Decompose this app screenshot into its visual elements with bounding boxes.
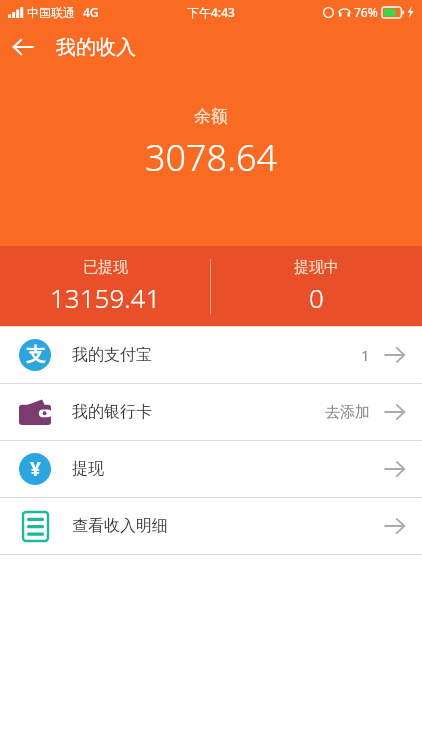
staticText: 下午4:43 — [187, 4, 235, 20]
staticText: 4G — [83, 4, 99, 20]
button[interactable]: 查看收入明细 — [0, 498, 422, 554]
staticText: 提现 — [72, 459, 104, 479]
staticText: 1 — [361, 345, 370, 365]
button[interactable]: ¥ — [0, 441, 422, 497]
staticText: 去添加 — [325, 403, 370, 422]
button[interactable]: 提现中 — [211, 258, 422, 315]
button[interactable]: 我的银行卡 — [0, 384, 422, 440]
staticText: 3078.64 — [0, 133, 422, 182]
button[interactable]: 已提现 — [0, 258, 210, 315]
staticText: 13159.41 — [50, 280, 161, 315]
staticText: 已提现 — [83, 258, 128, 277]
staticText: 提现中 — [294, 258, 339, 277]
staticText: 我的支付宝 — [72, 345, 152, 365]
button[interactable]: Back — [0, 24, 46, 70]
staticText: 我的银行卡 — [72, 402, 152, 422]
staticText: ¥ — [30, 456, 41, 482]
staticText: 我的收入 — [56, 35, 136, 60]
staticText: 支 — [26, 343, 45, 367]
staticText: 余额 — [0, 106, 422, 127]
staticText: 查看收入明细 — [72, 516, 168, 536]
staticText: 0 — [309, 280, 324, 315]
staticText: 中国联通 — [27, 5, 75, 20]
button[interactable]: 支 — [0, 327, 422, 383]
staticText: 76% — [354, 4, 378, 20]
